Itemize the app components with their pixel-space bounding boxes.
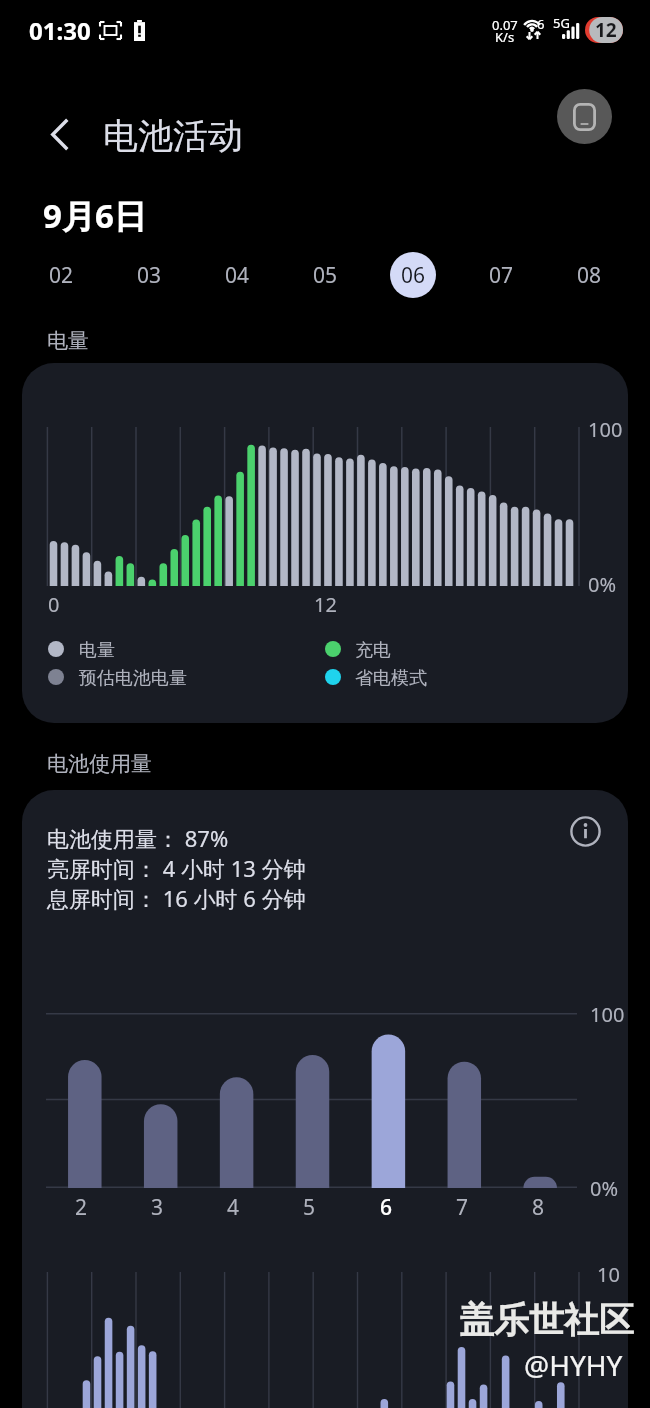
button[interactable]: 07	[478, 252, 524, 298]
staticText: 电量	[47, 328, 89, 354]
staticText: 3	[151, 1193, 164, 1222]
staticText: 8	[532, 1193, 545, 1222]
staticText: 电池使用量： 87%	[47, 823, 229, 853]
staticText: 亮屏时间： 4 小时 13 分钟	[47, 853, 306, 883]
staticText: 01:30	[29, 14, 91, 47]
staticText: 02	[49, 261, 74, 290]
staticText: 03	[137, 261, 162, 290]
staticText: 2	[75, 1193, 88, 1222]
button[interactable]: Device	[557, 89, 612, 144]
staticText: 04	[225, 261, 250, 290]
button[interactable]: 08	[566, 252, 612, 298]
staticText: @HYHY	[524, 1346, 623, 1384]
staticText: 电池活动	[103, 114, 243, 158]
staticText: 10	[597, 1261, 620, 1288]
button[interactable]: Back	[31, 105, 89, 163]
staticText: 07	[489, 261, 514, 290]
staticText: 电池使用量	[47, 751, 152, 777]
button[interactable]: 04	[214, 252, 260, 298]
button[interactable]: 02	[38, 252, 84, 298]
staticText: 100	[590, 1001, 625, 1028]
staticText: 12	[314, 591, 337, 618]
staticText: 预估电池电量	[79, 667, 187, 690]
staticText: 0%	[590, 1175, 619, 1202]
staticText: 6	[380, 1193, 393, 1222]
button[interactable]: 03	[126, 252, 172, 298]
staticText: 4	[227, 1193, 240, 1222]
staticText: 100	[588, 416, 623, 443]
staticText: 06	[401, 261, 426, 290]
staticText: 充电	[355, 639, 391, 662]
staticText: 5	[303, 1193, 316, 1222]
button[interactable]: 06	[390, 252, 436, 298]
staticText: 息屏时间： 16 小时 6 分钟	[47, 883, 306, 913]
staticText: 9月6日	[43, 193, 147, 238]
staticText: 05	[313, 261, 338, 290]
staticText: 省电模式	[355, 667, 427, 690]
staticText: 5G	[553, 14, 570, 32]
staticText: K/s	[495, 28, 515, 46]
button[interactable]: Info	[562, 808, 608, 854]
button[interactable]: 05	[302, 252, 348, 298]
staticText: 盖乐世社区	[459, 1298, 634, 1342]
staticText: 08	[577, 261, 602, 290]
staticText: 电量	[79, 639, 115, 662]
staticText: 0	[48, 591, 60, 618]
staticText: 12	[595, 17, 617, 43]
staticText: 0%	[588, 571, 617, 598]
staticText: 0.07	[492, 16, 518, 34]
staticText: 7	[456, 1193, 469, 1222]
staticText: 6	[537, 15, 545, 33]
